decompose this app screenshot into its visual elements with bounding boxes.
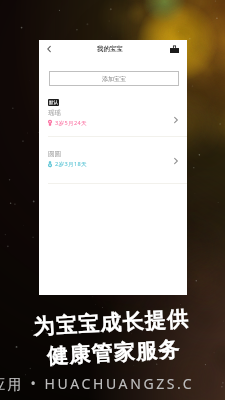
- staticText: 2岁3月18天: [55, 160, 88, 168]
- staticText: 我的宝宝: [97, 45, 123, 53]
- button[interactable]: 圆圆: [39, 137, 187, 184]
- staticText: 为宝宝成长提供: [33, 306, 191, 340]
- staticText: 圆圆: [48, 150, 62, 158]
- button[interactable]: 添加宝宝: [49, 71, 179, 86]
- button[interactable]: 默认: [39, 90, 187, 137]
- staticText: 3岁5月24天: [55, 119, 88, 127]
- staticText: 默认: [49, 100, 58, 106]
- staticText: 瑶瑶: [48, 109, 62, 117]
- button[interactable]: Gallery: [166, 41, 182, 57]
- staticText: 应用 • HUACHUANGZS.C: [0, 374, 195, 393]
- button[interactable]: Back: [41, 41, 57, 57]
- staticText: 添加宝宝: [102, 75, 126, 83]
- staticText: 健康管家服务: [46, 336, 181, 369]
